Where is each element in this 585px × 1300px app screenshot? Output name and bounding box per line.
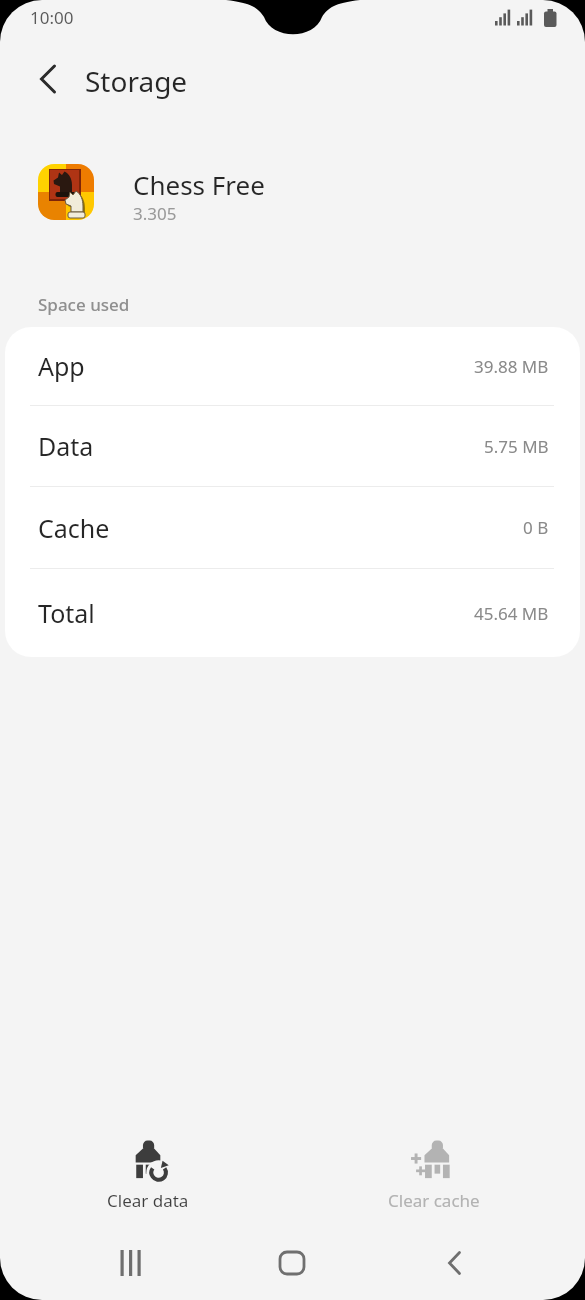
staticText: Cache [38,511,110,545]
staticText: Total [38,596,95,630]
button[interactable]: Total [5,569,580,657]
button[interactable] [107,1239,155,1287]
staticText: Storage [85,62,188,100]
button[interactable] [431,1239,479,1287]
staticText: 5.75 MB [484,435,549,458]
button[interactable]: Clear cache [374,1143,494,1221]
button[interactable]: App [5,327,580,405]
staticText: Clear data [107,1189,189,1212]
staticText: Data [38,429,94,463]
staticText: 0 B [523,516,549,539]
button[interactable]: Clear data [88,1143,208,1221]
button[interactable]: Cache [5,487,580,568]
staticText: 39.88 MB [474,355,549,378]
staticText: 10:00 [30,6,74,29]
staticText: 3.305 [133,202,177,225]
button[interactable] [268,1239,316,1287]
staticText: Chess Free [133,167,265,202]
staticText: 45.64 MB [474,602,549,625]
button[interactable] [24,55,72,103]
staticText: Space used [38,293,130,316]
button[interactable]: Data [5,406,580,486]
staticText: App [38,349,85,383]
staticText: Clear cache [388,1189,480,1212]
